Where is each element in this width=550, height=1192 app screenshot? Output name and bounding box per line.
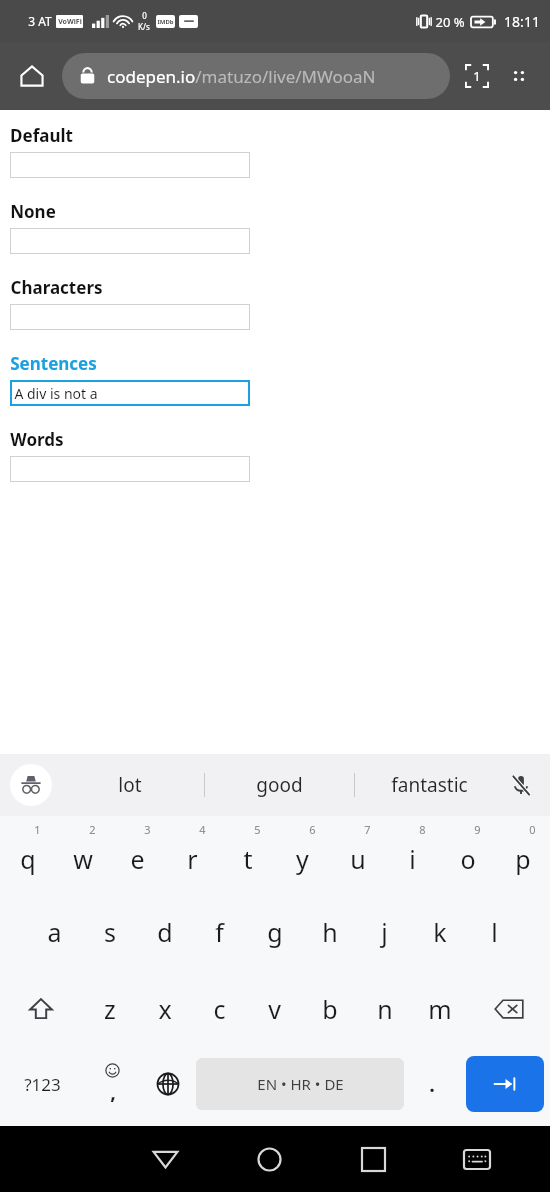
- button[interactable]: Recent apps: [321, 1126, 425, 1192]
- staticText: x: [158, 992, 172, 1026]
- button[interactable]: f: [192, 893, 247, 970]
- staticText: IMDb: [157, 18, 174, 26]
- button[interactable]: Change language: [140, 1048, 196, 1120]
- button[interactable]: 9: [440, 816, 495, 893]
- button[interactable]: g: [247, 893, 302, 970]
- button[interactable]: [10, 456, 250, 482]
- button[interactable]: c: [192, 970, 247, 1048]
- button[interactable]: m: [412, 970, 467, 1048]
- staticText: q: [20, 842, 36, 876]
- staticText: fantastic: [391, 772, 468, 798]
- staticText: e: [130, 842, 145, 876]
- staticText: Characters: [10, 276, 103, 299]
- button[interactable]: Home: [217, 1126, 321, 1192]
- staticText: good: [256, 772, 303, 798]
- staticText: lot: [118, 772, 142, 798]
- button[interactable]: Home: [10, 54, 54, 98]
- staticText: y: [296, 842, 309, 876]
- staticText: v: [268, 992, 281, 1026]
- staticText: n: [377, 992, 393, 1026]
- button[interactable]: More options: [498, 55, 540, 97]
- button[interactable]: good: [205, 754, 354, 816]
- staticText: s: [104, 915, 116, 949]
- staticText: 18:11: [504, 12, 540, 31]
- staticText: 1: [473, 67, 481, 85]
- staticText: c: [213, 992, 226, 1026]
- staticText: 20 %: [435, 13, 465, 31]
- staticText: Sentences: [10, 352, 97, 375]
- staticText: m: [428, 992, 452, 1026]
- button[interactable]: fantastic: [355, 754, 504, 816]
- button[interactable]: Tabs: 1 open: [456, 55, 498, 97]
- staticText: z: [104, 992, 116, 1026]
- button[interactable]: A div is not a: [10, 380, 250, 406]
- button[interactable]: 0: [495, 816, 550, 893]
- staticText: K/s: [138, 21, 150, 32]
- staticText: l: [491, 915, 498, 949]
- button[interactable]: EN • HR • DE: [196, 1058, 404, 1110]
- staticText: u: [350, 842, 366, 876]
- button[interactable]: [10, 304, 250, 330]
- button[interactable]: j: [357, 893, 412, 970]
- button[interactable]: k: [412, 893, 467, 970]
- button[interactable]: 2: [55, 816, 110, 893]
- staticText: A div is not a: [14, 384, 98, 403]
- button[interactable]: Shift: [0, 970, 82, 1048]
- button[interactable]: [10, 228, 250, 254]
- button[interactable]: Enter: [466, 1056, 544, 1112]
- button[interactable]: Backspace: [467, 970, 550, 1048]
- staticText: 3 AT: [28, 13, 52, 29]
- button[interactable]: 8: [385, 816, 440, 893]
- button[interactable]: ?123: [0, 1048, 84, 1120]
- staticText: d: [157, 915, 173, 949]
- button[interactable]: 5: [220, 816, 275, 893]
- button[interactable]: Incognito mode: [10, 764, 52, 806]
- button[interactable]: lot: [56, 754, 204, 816]
- staticText: .: [429, 1071, 435, 1098]
- staticText: r: [187, 842, 198, 876]
- staticText: t: [243, 842, 253, 876]
- button[interactable]: 3: [110, 816, 165, 893]
- staticText: Words: [10, 428, 64, 451]
- staticText: b: [322, 992, 338, 1026]
- button[interactable]: Hide keyboard: [425, 1126, 529, 1192]
- staticText: 1: [34, 822, 41, 837]
- button[interactable]: 6: [275, 816, 330, 893]
- button[interactable]: b: [302, 970, 357, 1048]
- button[interactable]: [10, 152, 250, 178]
- staticText: 6: [309, 822, 316, 837]
- button[interactable]: codepen.io/matuzo/live/MWooaN: [62, 53, 450, 99]
- button[interactable]: n: [357, 970, 412, 1048]
- button[interactable]: d: [137, 893, 192, 970]
- staticText: ,: [110, 1078, 116, 1105]
- staticText: codepen.io/matuzo/live/MWooaN: [107, 65, 376, 88]
- staticText: a: [47, 915, 62, 949]
- button[interactable]: Emoji and comma: [84, 1048, 140, 1120]
- staticText: None: [10, 200, 56, 223]
- button[interactable]: x: [137, 970, 192, 1048]
- staticText: 9: [474, 822, 481, 837]
- button[interactable]: 1: [0, 816, 55, 893]
- staticText: 3: [144, 822, 151, 837]
- staticText: k: [433, 915, 447, 949]
- staticText: 0: [142, 10, 147, 21]
- button[interactable]: s: [82, 893, 137, 970]
- staticText: j: [381, 915, 388, 949]
- staticText: 5: [254, 822, 261, 837]
- button[interactable]: v: [247, 970, 302, 1048]
- staticText: ?123: [24, 1073, 61, 1096]
- staticText: 0: [529, 822, 536, 837]
- button[interactable]: h: [302, 893, 357, 970]
- button[interactable]: z: [82, 970, 137, 1048]
- button[interactable]: Back: [113, 1126, 217, 1192]
- staticText: 7: [364, 822, 371, 837]
- button[interactable]: 4: [165, 816, 220, 893]
- button[interactable]: .: [404, 1048, 460, 1120]
- button[interactable]: 7: [330, 816, 385, 893]
- button[interactable]: Voice input off: [500, 764, 542, 806]
- staticText: p: [515, 842, 531, 876]
- button[interactable]: l: [467, 893, 522, 970]
- staticText: h: [322, 915, 338, 949]
- button[interactable]: a: [27, 893, 82, 970]
- staticText: 2: [89, 822, 96, 837]
